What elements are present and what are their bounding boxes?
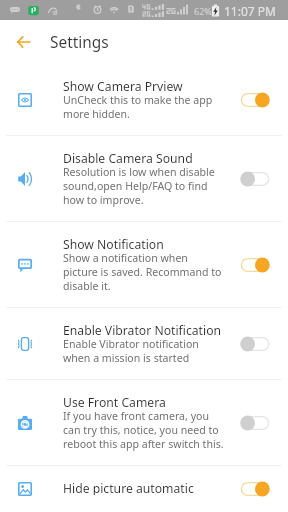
staticText: Show Notification xyxy=(63,236,164,251)
button[interactable]: Off xyxy=(239,413,271,433)
staticText: Disable Camera Sound xyxy=(63,150,193,165)
staticText: Enable Vibrator Notification xyxy=(63,322,222,337)
button[interactable]: Disable Camera Sound xyxy=(0,136,288,221)
button[interactable]: On xyxy=(239,480,271,498)
staticText: Show Camera Prview xyxy=(63,78,183,93)
staticText: Resolution is low when disable sound,ope… xyxy=(63,165,224,207)
staticText: If you have front camera, you can try th… xyxy=(63,409,224,451)
button[interactable]: Back xyxy=(8,27,38,57)
button[interactable]: Show Notification xyxy=(0,222,288,307)
button[interactable]: Hide picture automatic xyxy=(0,466,288,512)
button[interactable]: Off xyxy=(239,169,271,189)
staticText: Hide picture automatic xyxy=(63,480,194,495)
staticText: Settings xyxy=(50,32,109,53)
staticText: 11:07 PM xyxy=(224,3,276,19)
button[interactable]: Show Camera Prview xyxy=(0,64,288,135)
staticText: 62% xyxy=(194,5,212,17)
button[interactable]: Off xyxy=(239,334,271,354)
button[interactable]: Use Front Camera xyxy=(0,380,288,465)
staticText: Show a notification when picture is save… xyxy=(63,251,224,293)
button[interactable]: Enable Vibrator Notification xyxy=(0,308,288,379)
staticText: UnCheck this to make the app more hidden… xyxy=(63,93,224,121)
button[interactable]: On xyxy=(239,90,271,110)
staticText: Enable Vibrator notification when a miss… xyxy=(63,337,224,365)
staticText: Use Front Camera xyxy=(63,394,166,409)
button[interactable]: On xyxy=(239,255,271,275)
